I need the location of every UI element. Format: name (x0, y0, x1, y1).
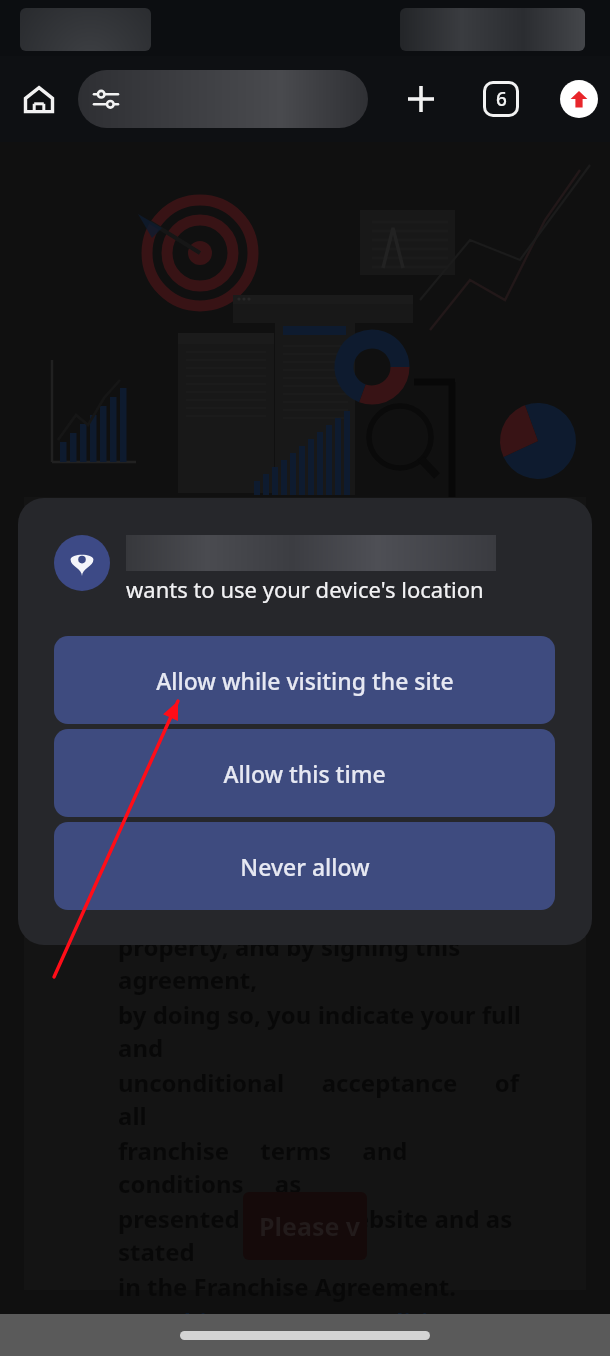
staticText: property, and by signing this agreement, (118, 930, 554, 996)
staticText: Please v (259, 1209, 361, 1243)
button[interactable]: Allow while visiting the site (54, 636, 555, 724)
staticText: presented on this website and as stated (118, 1202, 554, 1268)
staticText: wants to use your device's location (126, 574, 484, 604)
button[interactable]: Please v (243, 1192, 367, 1260)
staticText: Never allow (240, 851, 370, 882)
button[interactable] (78, 70, 368, 128)
staticText: unconditional acceptance of all (118, 1066, 554, 1132)
button[interactable]: Never allow (54, 822, 555, 910)
button[interactable]: Switch tabs, 6 open (470, 68, 532, 130)
staticText: by doing so, you indicate your full and (118, 998, 554, 1064)
button[interactable]: Home (0, 56, 78, 142)
staticText: Allow while visiting the site (156, 665, 454, 696)
staticText: 6 (496, 86, 507, 112)
button[interactable]: New tab (390, 68, 452, 130)
staticText: Franchise Terms & Conditions (118, 1305, 471, 1338)
staticText: franchise terms and conditions as (118, 1134, 554, 1200)
staticText: in the Franchise Agreement. (118, 1270, 456, 1303)
button[interactable]: Downloads (548, 68, 610, 130)
staticText: Allow this time (223, 758, 386, 789)
button[interactable]: Allow this time (54, 729, 555, 817)
